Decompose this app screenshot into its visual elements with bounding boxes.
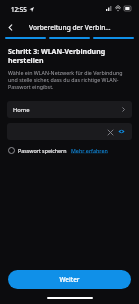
button[interactable]: Löschen — [7, 123, 132, 140]
button[interactable]: Passwort anzeigen — [117, 127, 126, 136]
button[interactable]: Home — [7, 101, 132, 118]
button[interactable]: Weiter — [8, 270, 131, 289]
button[interactable]: Mehr erfahren — [71, 147, 108, 154]
staticText: Passwort speichern — [18, 147, 67, 154]
staticText: Weiter — [59, 275, 80, 284]
button[interactable]: Löschen — [106, 128, 114, 136]
staticText: Mehr erfahren — [71, 147, 108, 154]
button[interactable]: Zurück — [3, 20, 17, 34]
staticText: Schritt 3: WLAN-Verbindung herstellen — [8, 47, 131, 65]
button[interactable]: Passwort speichern — [8, 146, 67, 155]
staticText: 12:55 — [11, 5, 27, 13]
staticText: Wähle ein WLAN-Netzwerk für die Verbindu… — [8, 69, 131, 90]
staticText: Home — [13, 106, 30, 114]
staticText: Vorbereitung der Verbin… — [29, 23, 111, 32]
